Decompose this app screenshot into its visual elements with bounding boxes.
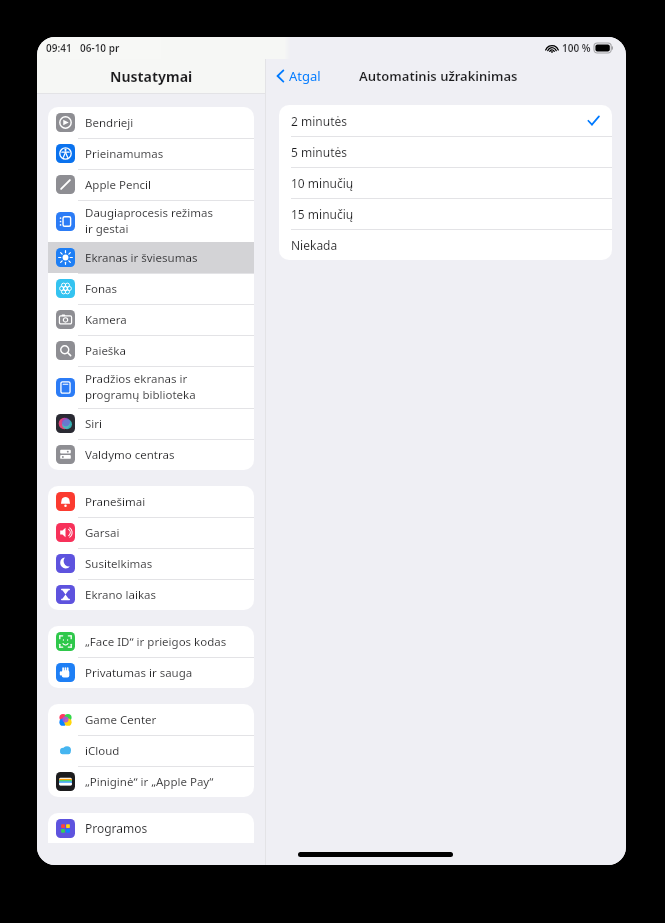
button[interactable]: Ekrano laikas [48, 579, 254, 610]
staticText: Ekranas ir šviesumas [85, 250, 198, 266]
staticText: 06-10 pr [80, 41, 120, 55]
button[interactable]: „Piniginė“ ir „Apple Pay“ [48, 766, 254, 797]
button[interactable]: 15 minučių [279, 198, 612, 229]
button[interactable]: Paieška [48, 335, 254, 366]
button[interactable]: Apple Pencil [48, 169, 254, 200]
staticText: Automatinis užrakinimas [359, 67, 518, 85]
button[interactable]: Bendrieji [48, 107, 254, 138]
staticText: 2 minutės [291, 113, 347, 129]
button[interactable]: Niekada [279, 229, 612, 260]
staticText: 100 % [562, 41, 591, 55]
staticText: ir gestai [85, 221, 129, 237]
staticText: Paieška [85, 343, 126, 359]
staticText: Garsai [85, 525, 120, 541]
staticText: Nustatymai [110, 67, 193, 86]
other: Back [276, 69, 285, 83]
staticText: Kamera [85, 312, 127, 328]
staticText: Ekrano laikas [85, 587, 157, 603]
staticText: Pranešimai [85, 494, 146, 510]
button[interactable]: „Face ID“ ir prieigos kodas [48, 626, 254, 657]
button[interactable]: Siri [48, 408, 254, 439]
staticText: Prieinamumas [85, 146, 164, 162]
button[interactable]: 5 minutės [279, 136, 612, 167]
button[interactable]: Back [272, 64, 325, 88]
staticText: iCloud [85, 743, 120, 759]
staticText: Atgal [289, 67, 321, 85]
button[interactable]: iCloud [48, 735, 254, 766]
staticText: Susitelkimas [85, 556, 153, 572]
button[interactable]: Programos [48, 813, 254, 843]
staticText: Apple Pencil [85, 177, 151, 193]
staticText: 09:41 [46, 41, 72, 55]
button[interactable]: Valdymo centras [48, 439, 254, 470]
button[interactable]: Garsai [48, 517, 254, 548]
staticText: Siri [85, 416, 102, 432]
staticText: „Face ID“ ir prieigos kodas [85, 634, 227, 650]
button[interactable]: Pranešimai [48, 486, 254, 517]
staticText: Privatumas ir sauga [85, 665, 193, 681]
staticText: Pradžios ekranas ir [85, 371, 188, 387]
staticText: Game Center [85, 712, 157, 728]
staticText: Programos [85, 820, 148, 836]
staticText: Fonas [85, 281, 117, 297]
button[interactable]: 2 minutės [279, 105, 612, 136]
staticText: „Piniginė“ ir „Apple Pay“ [85, 774, 214, 790]
button[interactable]: Daugiaprocesis režimas [48, 200, 254, 242]
button[interactable]: Ekranas ir šviesumas [48, 242, 254, 273]
staticText: 15 minučių [291, 206, 354, 222]
button[interactable]: Susitelkimas [48, 548, 254, 579]
staticText: Daugiaprocesis režimas [85, 205, 213, 221]
staticText: 10 minučių [291, 175, 354, 191]
button[interactable]: Pradžios ekranas ir [48, 366, 254, 408]
staticText: Valdymo centras [85, 447, 175, 463]
staticText: programų biblioteka [85, 387, 196, 403]
button[interactable]: 10 minučių [279, 167, 612, 198]
staticText: 5 minutės [291, 144, 347, 160]
staticText: Bendrieji [85, 115, 134, 131]
button[interactable]: Game Center [48, 704, 254, 735]
button[interactable]: Prieinamumas [48, 138, 254, 169]
button[interactable]: Kamera [48, 304, 254, 335]
button[interactable]: Privatumas ir sauga [48, 657, 254, 688]
staticText: Niekada [291, 237, 338, 253]
button[interactable]: Fonas [48, 273, 254, 304]
